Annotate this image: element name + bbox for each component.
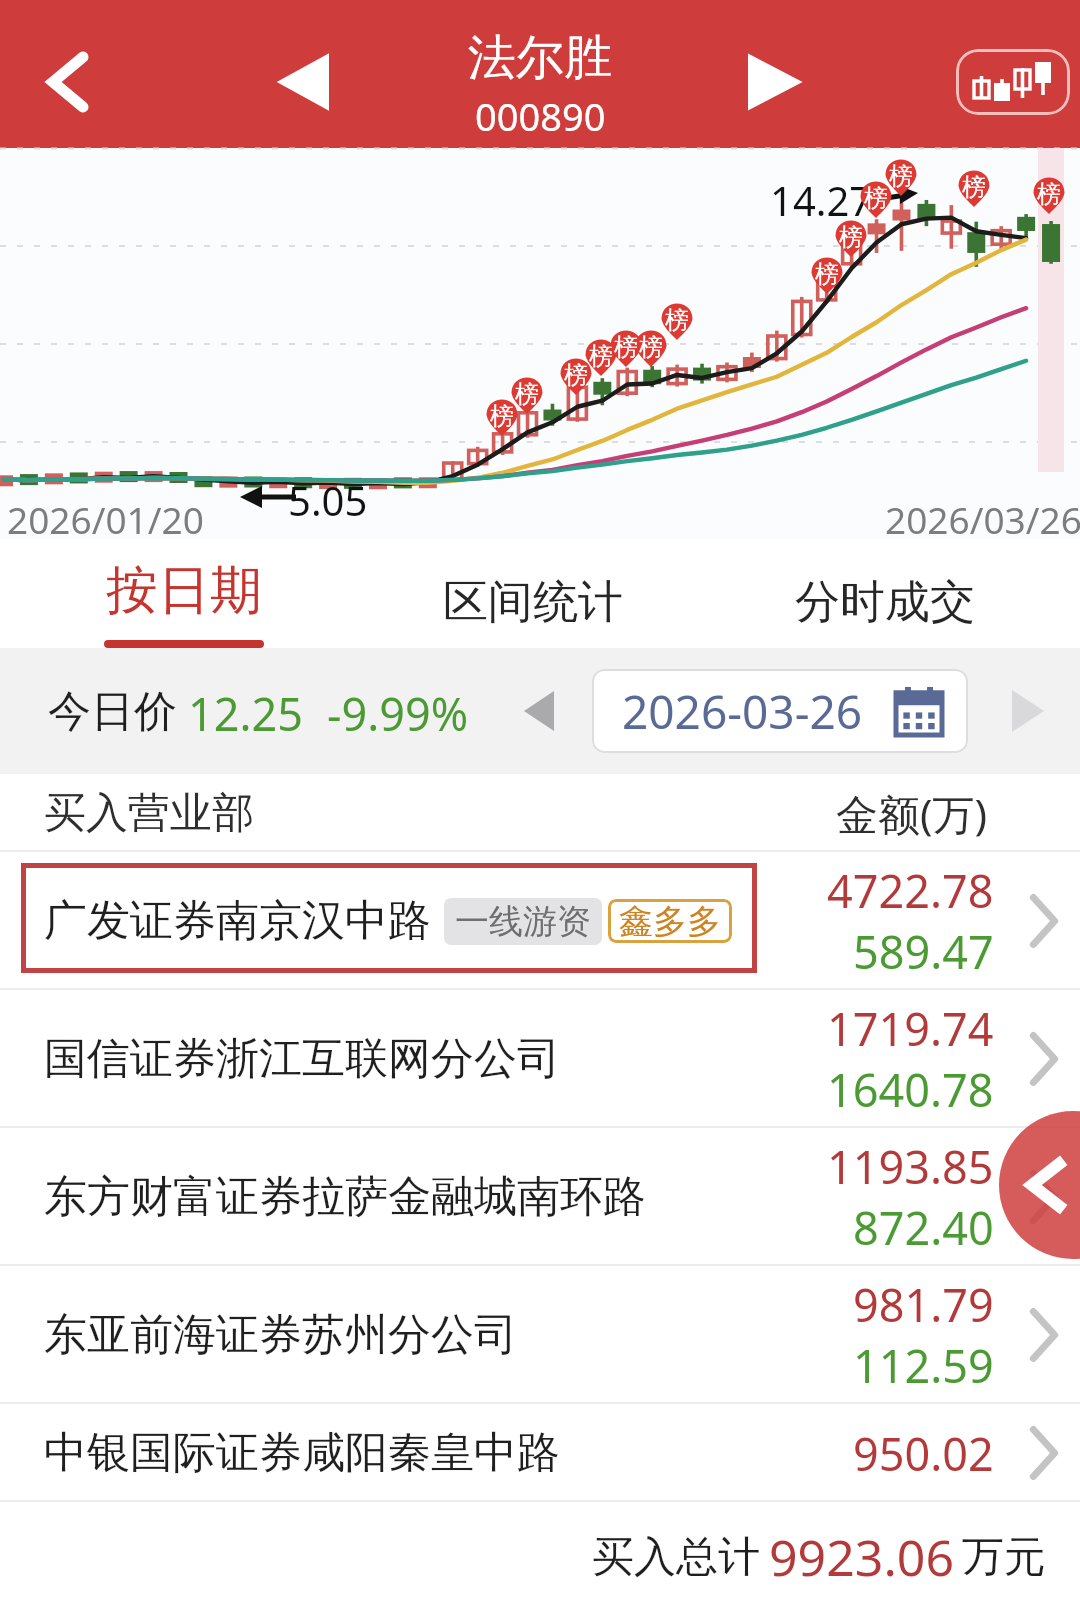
staticText: 万元 <box>962 1531 1046 1584</box>
button[interactable]: Next day <box>990 673 1066 749</box>
staticText: 榜 <box>515 379 539 409</box>
staticText: 东亚前海证券苏州分公司 <box>44 1308 517 1362</box>
staticText: 1719.74 <box>827 998 994 1059</box>
staticText: 981.79 <box>853 1274 994 1335</box>
staticText: 榜 <box>962 172 986 202</box>
staticText: 中银国际证券咸阳秦皇中路 <box>44 1426 560 1480</box>
button[interactable]: Next stock <box>723 32 823 132</box>
staticText: 1193.85 <box>827 1136 994 1197</box>
staticText: 区间统计 <box>443 574 623 631</box>
staticText: 国信证券浙江互联网分公司 <box>44 1032 560 1086</box>
button[interactable]: Collapse panel <box>999 1111 1080 1259</box>
staticText: 买入总计 <box>592 1531 760 1584</box>
staticText: 榜 <box>589 341 613 371</box>
staticText: 榜 <box>1037 179 1061 209</box>
staticText: 950.02 <box>853 1423 994 1484</box>
staticText: 榜 <box>889 161 913 191</box>
staticText: 4722.78 <box>827 860 994 921</box>
staticText: 榜 <box>490 401 514 431</box>
staticText: 榜 <box>665 305 689 335</box>
staticText: 榜 <box>839 222 863 252</box>
button[interactable]: 东亚前海证券苏州分公司 <box>0 1266 1080 1404</box>
staticText: 榜 <box>815 259 839 289</box>
staticText: 5.05 <box>288 473 368 527</box>
button[interactable]: 2026-03-26 <box>592 669 968 753</box>
button[interactable]: Previous day <box>501 673 577 749</box>
staticText: 589.47 <box>853 921 994 982</box>
button[interactable]: 中银国际证券咸阳秦皇中路 <box>0 1404 1080 1502</box>
staticText: 14.27 <box>770 173 873 227</box>
staticText: -9.99% <box>327 683 469 744</box>
staticText: 广发证券南京汉中路 <box>44 894 431 948</box>
staticText: 12.25 <box>188 683 304 744</box>
staticText: 872.40 <box>853 1197 994 1258</box>
button[interactable]: 按日期 <box>8 539 360 648</box>
staticText: 000890 <box>475 90 606 142</box>
staticText: 东方财富证券拉萨金融城南环路 <box>44 1170 646 1224</box>
button[interactable]: 东方财富证券拉萨金融城南环路 <box>0 1128 1080 1266</box>
staticText: 按日期 <box>106 558 262 624</box>
staticText: 今日价 <box>48 685 177 739</box>
button[interactable]: 分时成交 <box>713 539 1057 648</box>
staticText: 法尔胜 <box>468 28 612 88</box>
staticText: 金额(万) <box>836 785 988 842</box>
staticText: 榜 <box>639 332 663 362</box>
button[interactable]: Previous stock <box>255 32 355 132</box>
staticText: 榜 <box>864 183 888 213</box>
button[interactable]: 国信证券浙江互联网分公司 <box>0 990 1080 1128</box>
staticText: 鑫多多 <box>619 900 721 943</box>
staticText: 榜 <box>614 332 638 362</box>
button[interactable]: 广发证券南京汉中路 <box>0 852 1080 990</box>
staticText: 分时成交 <box>795 574 975 631</box>
button[interactable]: K-line chart <box>956 49 1070 115</box>
staticText: 买入营业部 <box>44 787 254 840</box>
staticText: 一线游资 <box>455 900 591 943</box>
button[interactable]: Back <box>13 27 123 137</box>
staticText: 2026-03-26 <box>622 680 863 743</box>
staticText: 2026/01/20 <box>7 494 204 544</box>
staticText: 榜 <box>564 360 588 390</box>
staticText: 2026/03/26 <box>885 494 1080 544</box>
staticText: 112.59 <box>853 1335 994 1396</box>
staticText: 1640.78 <box>827 1059 994 1120</box>
button[interactable]: 区间统计 <box>353 539 713 648</box>
staticText: 9923.06 <box>769 1523 954 1591</box>
